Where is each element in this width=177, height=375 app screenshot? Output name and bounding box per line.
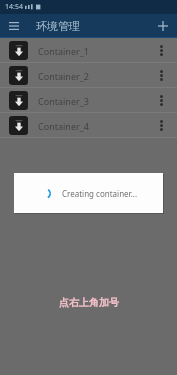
button[interactable]: Add: [154, 17, 172, 35]
button[interactable]: More options for Container_1: [151, 38, 171, 63]
staticText: Container_1: [38, 45, 89, 57]
button[interactable]: Container_1: [0, 38, 177, 63]
button[interactable]: More options for Container_3: [151, 88, 171, 113]
staticText: 14:54: [5, 2, 23, 12]
staticText: Container_3: [38, 95, 89, 107]
staticText: 点右上角加号: [59, 296, 119, 309]
button[interactable]: Menu: [6, 18, 22, 34]
button[interactable]: Container_4: [0, 113, 177, 138]
button[interactable]: More options for Container_2: [151, 63, 171, 88]
staticText: Container_2: [38, 70, 89, 82]
staticText: 环境管理: [36, 19, 80, 33]
button[interactable]: More options for Container_4: [151, 113, 171, 138]
button[interactable]: Container_3: [0, 88, 177, 113]
button[interactable]: Container_2: [0, 63, 177, 88]
staticText: Creating container...: [62, 188, 138, 199]
staticText: Container_4: [38, 120, 89, 132]
